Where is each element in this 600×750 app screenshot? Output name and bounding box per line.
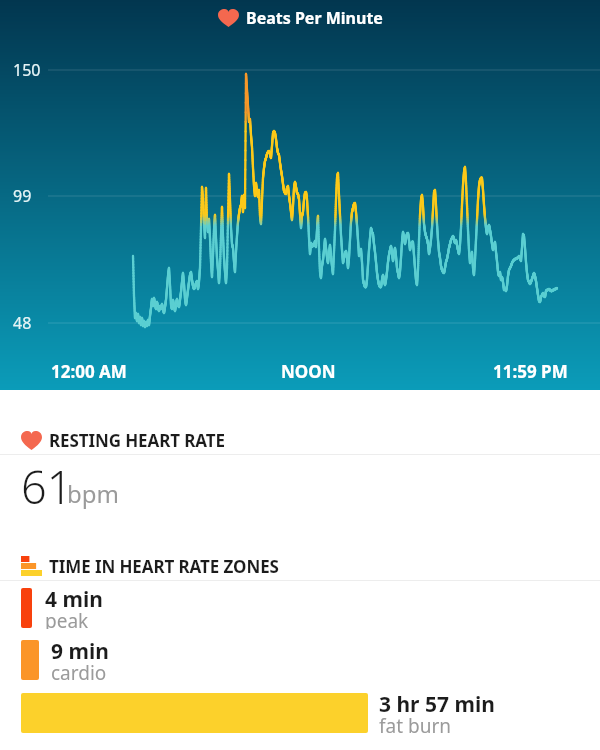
staticText: 48 bbox=[13, 312, 32, 334]
staticText: 4 min bbox=[45, 585, 103, 614]
button[interactable]: 3 hr 57 min bbox=[0, 688, 600, 738]
staticText: Beats Per Minute bbox=[246, 7, 383, 29]
staticText: 150 bbox=[13, 59, 41, 81]
staticText: TIME IN HEART RATE ZONES bbox=[49, 555, 279, 578]
staticText: peak bbox=[45, 608, 89, 629]
staticText: 12:00 AM bbox=[51, 360, 127, 383]
staticText: RESTING HEART RATE bbox=[49, 429, 225, 452]
button[interactable]: 4 min bbox=[0, 583, 600, 633]
staticText: fat burn bbox=[379, 713, 452, 734]
staticText: 3 hr 57 min bbox=[379, 690, 495, 719]
staticText: 11:59 PM bbox=[493, 360, 568, 383]
staticText: 99 bbox=[13, 185, 32, 207]
button[interactable]: TIME IN HEART RATE ZONES bbox=[0, 549, 600, 583]
staticText: cardio bbox=[51, 660, 107, 681]
button[interactable]: RESTING HEART RATE bbox=[0, 422, 600, 458]
staticText: bpm bbox=[67, 477, 119, 510]
staticText: 9 min bbox=[51, 637, 109, 666]
button[interactable]: 9 min bbox=[0, 635, 600, 685]
staticText: NOON bbox=[281, 360, 336, 383]
staticText: 61 bbox=[21, 456, 73, 517]
